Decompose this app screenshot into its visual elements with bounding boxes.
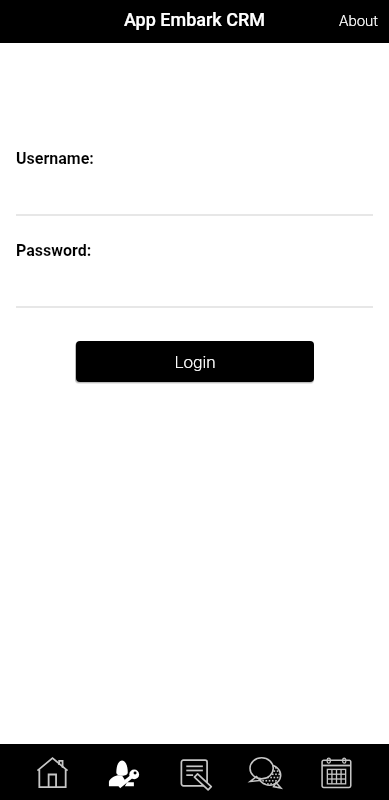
button[interactable]: Home xyxy=(17,744,88,800)
staticText: Username: xyxy=(16,149,94,168)
staticText: About xyxy=(339,12,379,30)
staticText: Login xyxy=(174,352,216,372)
staticText: App Embark CRM xyxy=(124,9,265,30)
button[interactable]: Messages xyxy=(230,744,301,800)
button[interactable]: Contacts xyxy=(88,744,159,800)
staticText: Password: xyxy=(16,241,92,260)
button[interactable]: Calendar xyxy=(301,744,372,800)
button[interactable]: Notes xyxy=(159,744,230,800)
button[interactable]: About xyxy=(325,4,389,39)
button[interactable]: Login xyxy=(76,341,314,382)
